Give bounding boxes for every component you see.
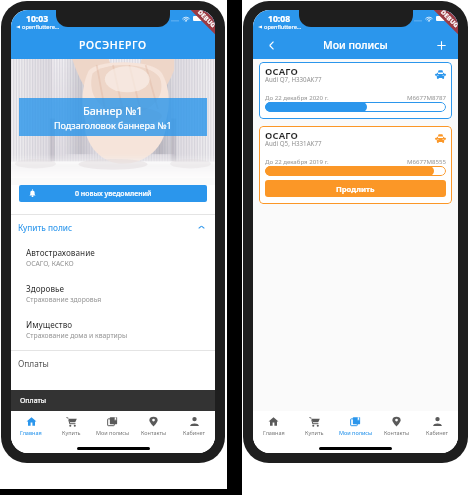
staticText: Мои полисы [323, 38, 388, 52]
staticText: Главная [263, 429, 285, 436]
staticText: Подзаголовок баннера №1 [54, 119, 172, 131]
button[interactable]: Главная [11, 411, 51, 453]
button[interactable]: Купить полис [11, 215, 215, 239]
staticText: Контакты [384, 429, 410, 436]
staticText: Оплаты [20, 396, 47, 406]
button[interactable]: Контакты [133, 411, 174, 453]
button[interactable]: Add policy [430, 34, 452, 56]
staticText: Контакты [141, 429, 167, 436]
staticText: openfluttere… [264, 23, 302, 31]
button[interactable]: Мои полисы [335, 411, 376, 453]
staticText: Страхование здоровья [26, 295, 102, 304]
button[interactable]: ОСАГО [259, 126, 452, 204]
staticText: ОСАГО [265, 129, 298, 142]
staticText: Главная [20, 429, 42, 436]
staticText: 10:08 [268, 13, 291, 25]
staticText: Audi Q7, H330AK77 [265, 75, 322, 83]
button[interactable]: Купить [51, 411, 92, 453]
button[interactable]: Главная [253, 411, 294, 453]
staticText: Купить [62, 429, 81, 436]
staticText: Баннер №1 [83, 103, 143, 118]
button[interactable]: Купить [294, 411, 335, 453]
staticText: До 22 декабря 2020 г. [265, 93, 329, 101]
button[interactable]: Контакты [376, 411, 417, 453]
staticText: ОСАГО, КАСКО [26, 259, 74, 268]
staticText: Купить полис [18, 222, 73, 233]
staticText: Audi Q5, H331AK77 [265, 139, 322, 147]
button[interactable]: Back [260, 34, 282, 56]
staticText: Кабинет [426, 429, 449, 436]
staticText: openfluttere… [22, 23, 60, 31]
staticText: 10:03 [26, 13, 49, 25]
button[interactable]: Кабинет [417, 411, 458, 453]
staticText: Оплаты [18, 358, 49, 369]
button[interactable]: Автострахование [11, 239, 215, 275]
staticText: Мои полисы [339, 429, 373, 436]
button[interactable]: Продлить [265, 180, 446, 197]
button[interactable]: Оплаты [11, 351, 215, 375]
staticText: Имущество [26, 319, 73, 330]
staticText: M6677M8787 [407, 93, 446, 101]
staticText: До 22 декабря 2019 г. [265, 157, 329, 165]
staticText: РОСЭНЕРГО [79, 38, 147, 52]
button[interactable]: ОСАГО [259, 62, 452, 119]
staticText: M6677M8555 [407, 157, 446, 165]
staticText: Автострахование [26, 247, 95, 258]
button[interactable]: 0 новых уведомлений [19, 185, 207, 202]
button[interactable]: Имущество [11, 311, 215, 347]
staticText: ОСАГО [265, 65, 298, 78]
button[interactable]: Мои полисы [92, 411, 133, 453]
staticText: Купить [305, 429, 324, 436]
staticText: Продлить [336, 184, 375, 194]
staticText: Кабинет [183, 429, 206, 436]
staticText: Страхование дома и квартиры [26, 331, 128, 340]
staticText: Мои полисы [96, 429, 130, 436]
button[interactable]: Кабинет [174, 411, 215, 453]
button[interactable]: Баннер №1 [19, 98, 207, 136]
staticText: Здоровье [26, 283, 65, 294]
button[interactable]: Здоровье [11, 275, 215, 311]
staticText: 0 новых уведомлений [75, 189, 152, 199]
staticText: DEBUG [196, 10, 215, 30]
staticText: DEBUG [439, 10, 458, 30]
